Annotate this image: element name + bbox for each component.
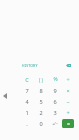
button[interactable]: × — [62, 85, 74, 96]
button[interactable]: 8 — [34, 85, 48, 96]
staticText: . — [26, 120, 28, 128]
staticText: % — [53, 76, 58, 83]
button[interactable]: 6 — [48, 96, 62, 107]
staticText: × — [66, 87, 70, 95]
staticText: 8 — [39, 87, 43, 95]
staticText: + — [66, 109, 70, 117]
staticText: 9 — [53, 87, 57, 95]
button[interactable]: 3 — [48, 107, 62, 118]
button[interactable]: ( ) — [34, 74, 48, 85]
staticText: = — [67, 120, 70, 127]
button[interactable]: 4 — [19, 96, 34, 107]
staticText: 7 — [25, 87, 29, 95]
staticText: 1 — [25, 109, 29, 117]
staticText: 6 — [53, 98, 57, 106]
button[interactable]: − — [62, 96, 74, 107]
staticText: 0 — [39, 120, 43, 128]
button[interactable]: 2 — [34, 107, 48, 118]
staticText: HISTORY — [22, 63, 38, 68]
button[interactable]: 0 — [34, 118, 48, 129]
staticText: C — [25, 76, 29, 84]
button[interactable]: . — [19, 118, 34, 129]
staticText: 5 — [39, 98, 43, 106]
button[interactable]: 5 — [34, 96, 48, 107]
button[interactable]: Backspace — [62, 59, 74, 72]
staticText: 4 — [25, 98, 29, 106]
staticText: ÷ — [66, 76, 70, 84]
button[interactable]: 7 — [19, 85, 34, 96]
staticText: +/− — [52, 121, 58, 126]
staticText: 3 — [53, 109, 57, 117]
button[interactable]: +/− — [48, 118, 62, 129]
button[interactable]: C — [19, 74, 34, 85]
button[interactable]: 9 — [48, 85, 62, 96]
staticText: ( ) — [39, 77, 43, 83]
button[interactable]: 1 — [19, 107, 34, 118]
staticText: − — [66, 98, 70, 106]
button[interactable]: % — [48, 74, 62, 85]
staticText: 2 — [39, 109, 43, 117]
button[interactable]: + — [62, 107, 74, 118]
button[interactable]: = — [62, 119, 74, 128]
button[interactable]: HISTORY — [19, 60, 41, 71]
button[interactable]: ÷ — [62, 74, 74, 85]
